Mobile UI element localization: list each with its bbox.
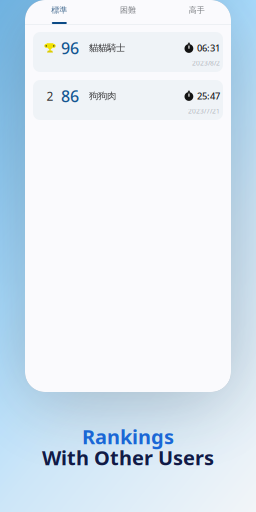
staticText: With Other Users (42, 444, 214, 471)
staticText: 貓貓騎士 (89, 42, 125, 54)
staticText: 狗狗肉 (89, 90, 116, 102)
staticText: 標準 (51, 5, 67, 15)
button[interactable]: 困難 (94, 0, 162, 24)
button[interactable]: 2 (33, 80, 223, 120)
button[interactable]: 96 (33, 32, 223, 72)
button[interactable]: 高手 (162, 0, 231, 24)
staticText: Rankings (82, 423, 174, 450)
staticText: 86 (61, 85, 79, 107)
staticText: 高手 (189, 5, 205, 15)
staticText: 06:31 (197, 42, 220, 54)
staticText: 96 (61, 37, 79, 59)
staticText: 2 (46, 88, 53, 104)
staticText: 25:47 (197, 90, 220, 102)
staticText: 困難 (120, 5, 136, 15)
staticText: 2023/7/21 (188, 107, 220, 115)
button[interactable]: 標準 (25, 0, 94, 24)
staticText: 2023/8/2 (192, 59, 220, 67)
